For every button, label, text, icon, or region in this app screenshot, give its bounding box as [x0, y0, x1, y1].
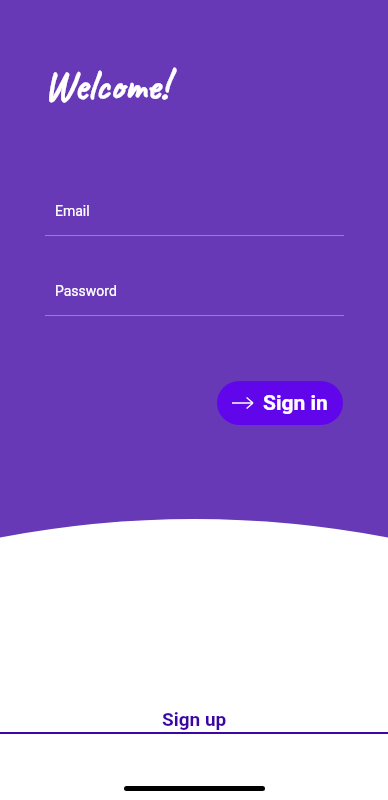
staticText: Sign up — [162, 708, 227, 730]
staticText: Welcome! — [44, 60, 169, 112]
other: Home gesture handle — [124, 786, 265, 791]
button[interactable]: Sign up — [0, 708, 388, 734]
staticText: Password — [55, 283, 117, 299]
button[interactable]: Sign in — [217, 381, 343, 425]
staticText: Sign in — [263, 391, 328, 416]
staticText: Email — [55, 203, 90, 219]
